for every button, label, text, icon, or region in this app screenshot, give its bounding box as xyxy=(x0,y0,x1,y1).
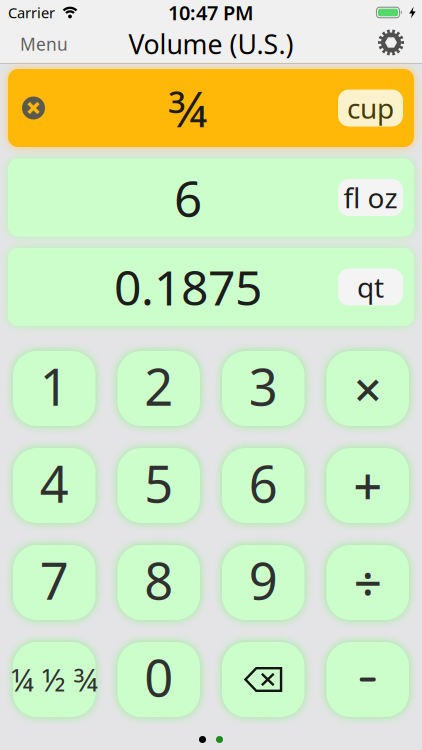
button[interactable]: Divide xyxy=(326,545,409,620)
staticText: fl oz xyxy=(343,179,397,216)
staticText: 6 xyxy=(249,449,278,517)
staticText: 8 xyxy=(144,546,173,614)
staticText: 6 xyxy=(174,165,202,230)
button[interactable]: fl oz xyxy=(338,179,403,216)
button[interactable]: 9 xyxy=(222,545,304,620)
staticText: 5 xyxy=(144,449,173,517)
button[interactable]: Subtract xyxy=(326,642,409,717)
button[interactable]: 8 xyxy=(117,545,200,620)
button[interactable]: Menu xyxy=(20,32,68,55)
staticText: 0.1875 xyxy=(114,255,262,319)
staticText: Carrier xyxy=(8,3,55,22)
button[interactable]: Delete xyxy=(222,642,304,717)
staticText: ¾ xyxy=(168,75,207,141)
staticText: 4 xyxy=(40,449,69,517)
staticText: 0 xyxy=(144,643,173,711)
button[interactable]: Settings xyxy=(378,31,404,57)
button[interactable]: qt xyxy=(338,268,403,305)
button[interactable]: 7 xyxy=(13,545,95,620)
button[interactable]: 4 xyxy=(13,448,95,523)
button[interactable]: Fractions xyxy=(13,642,95,717)
button[interactable]: 0 xyxy=(117,642,200,717)
staticText: 9 xyxy=(249,546,278,614)
staticText: 7 xyxy=(40,546,69,614)
staticText: cup xyxy=(347,89,394,127)
staticText: + xyxy=(353,452,382,519)
staticText: Volume (U.S.) xyxy=(128,26,293,62)
staticText: 1 xyxy=(40,352,69,420)
staticText: qt xyxy=(357,268,384,306)
button[interactable]: cup xyxy=(338,89,403,126)
staticText: Menu xyxy=(20,32,68,55)
button[interactable]: 2 xyxy=(117,351,200,426)
button[interactable]: Add xyxy=(326,448,409,523)
button[interactable]: 1 xyxy=(13,351,95,426)
staticText: 10:47 PM xyxy=(168,0,254,26)
staticText: 3 xyxy=(249,352,278,420)
button[interactable]: Clear xyxy=(22,96,45,119)
button[interactable]: 5 xyxy=(117,448,200,523)
staticText: 2 xyxy=(144,352,173,420)
button[interactable]: Page control xyxy=(199,736,223,743)
staticText: ¼ ½ ¾ xyxy=(11,659,98,700)
staticText: × xyxy=(354,356,382,421)
staticText: ÷ xyxy=(354,550,382,615)
button[interactable]: 6 xyxy=(222,448,304,523)
button[interactable]: Multiply xyxy=(326,351,409,426)
button[interactable]: 3 xyxy=(222,351,304,426)
